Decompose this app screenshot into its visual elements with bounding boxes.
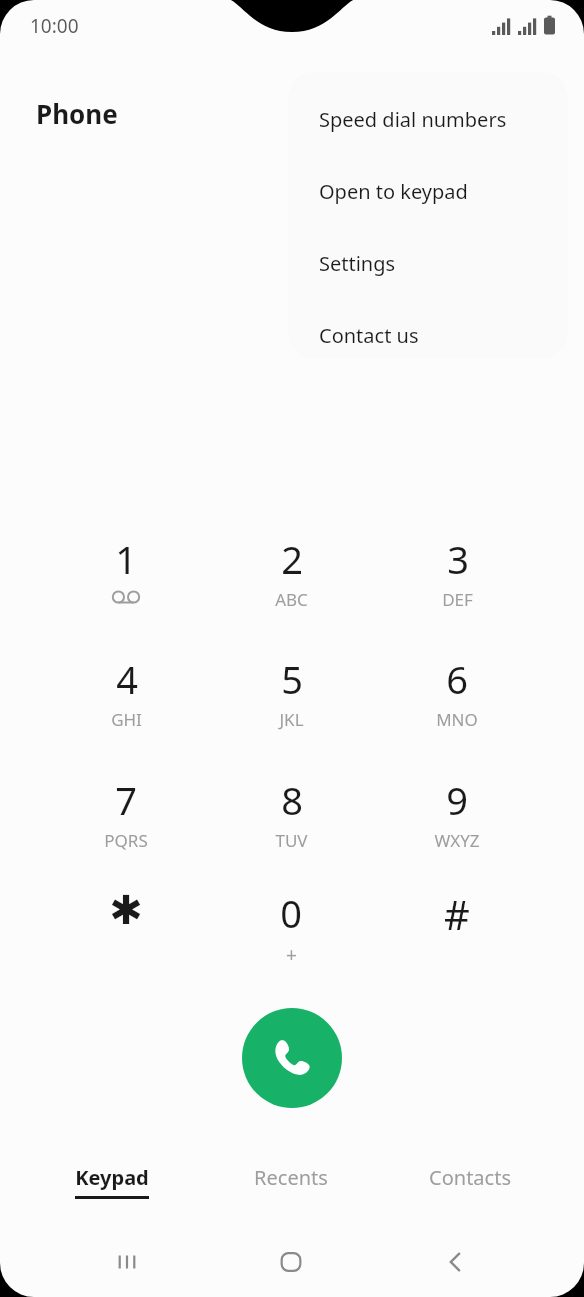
staticText: Keypad <box>75 1164 149 1191</box>
staticText: 1 <box>115 533 137 585</box>
staticText: Settings <box>319 250 396 277</box>
staticText: TUV <box>275 829 308 852</box>
button[interactable]: Open to keypad <box>288 162 568 220</box>
staticText: GHI <box>111 708 142 731</box>
staticText: 2 <box>281 533 303 585</box>
staticText: 5 <box>281 653 303 705</box>
button[interactable]: 6 <box>391 637 523 747</box>
staticText: + <box>286 942 297 968</box>
staticText: ABC <box>275 588 308 611</box>
button[interactable]: 4 <box>60 637 192 747</box>
button[interactable]: Contacts <box>390 1152 550 1210</box>
staticText: WXYZ <box>434 829 480 852</box>
staticText: JKL <box>279 708 304 731</box>
button[interactable]: ✱ <box>60 871 192 981</box>
button[interactable]: Back <box>418 1232 492 1292</box>
staticText: PQRS <box>104 829 148 852</box>
staticText: Recents <box>254 1164 328 1191</box>
staticText: ✱ <box>109 887 143 934</box>
button[interactable]: 5 <box>225 637 357 747</box>
button[interactable]: 8 <box>225 758 357 868</box>
staticText: 3 <box>447 533 469 585</box>
staticText: 7 <box>115 774 137 826</box>
staticText: DEF <box>442 588 473 611</box>
staticText: 8 <box>281 774 303 826</box>
staticText: 6 <box>446 653 468 705</box>
button[interactable]: Recents <box>211 1152 371 1210</box>
button[interactable]: 2 <box>225 517 357 627</box>
staticText: # <box>444 887 470 941</box>
staticText: Open to keypad <box>319 178 468 205</box>
button[interactable]: 7 <box>60 758 192 868</box>
staticText: 4 <box>116 653 138 705</box>
button[interactable]: Keypad <box>32 1152 192 1210</box>
button[interactable]: 3 <box>391 517 523 627</box>
staticText: Phone <box>36 96 118 131</box>
button[interactable]: Home <box>254 1232 328 1292</box>
button[interactable]: Settings <box>288 234 568 292</box>
staticText: 10:00 <box>30 13 79 39</box>
button[interactable]: # <box>391 871 523 981</box>
button[interactable]: Speed dial numbers <box>288 90 568 148</box>
button[interactable]: Contact us <box>288 306 568 359</box>
staticText: 9 <box>446 774 468 826</box>
button[interactable]: Call <box>242 1008 342 1108</box>
staticText: Speed dial numbers <box>319 106 507 133</box>
button[interactable]: 9 <box>391 758 523 868</box>
staticText: MNO <box>436 708 478 731</box>
button[interactable]: Recent apps <box>90 1232 164 1292</box>
staticText: 0 <box>280 887 302 939</box>
staticText: Contacts <box>429 1164 511 1191</box>
button[interactable]: 1 <box>60 517 192 627</box>
staticText: Contact us <box>319 322 419 349</box>
button[interactable]: 0 <box>225 871 357 981</box>
